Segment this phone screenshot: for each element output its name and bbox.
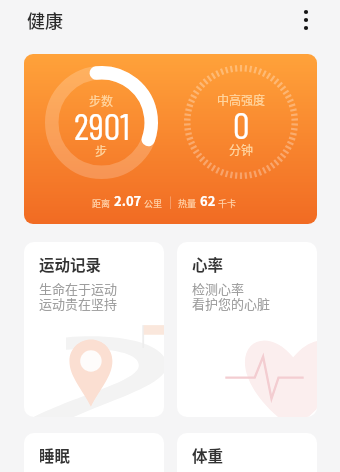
button[interactable]: 步数 xyxy=(24,54,317,224)
staticText: | xyxy=(169,193,172,209)
staticText: 62 xyxy=(200,191,216,210)
button[interactable]: 睡眠 xyxy=(24,433,164,472)
staticText: 体重 xyxy=(192,444,224,466)
button[interactable]: 心率 xyxy=(177,242,317,417)
staticText: 千卡 xyxy=(218,197,237,210)
staticText: 2.07 xyxy=(114,191,142,210)
button[interactable]: More options xyxy=(292,6,320,34)
staticText: 公里 xyxy=(144,197,163,210)
button[interactable]: 运动记录 xyxy=(24,242,164,417)
staticText: 生命在于运动 xyxy=(39,279,118,298)
staticText: 中高强度 xyxy=(217,91,266,108)
staticText: 心率 xyxy=(192,253,224,275)
staticText: 0 xyxy=(233,102,250,146)
staticText: 热量 xyxy=(178,197,197,210)
staticText: 检测心率 xyxy=(192,279,245,298)
staticText: 分钟 xyxy=(229,141,254,158)
staticText: 看护您的心脏 xyxy=(192,294,271,313)
staticText: 步 xyxy=(95,142,108,159)
staticText: 运动记录 xyxy=(39,253,102,275)
staticText: 2901 xyxy=(74,103,130,147)
staticText: 健康 xyxy=(27,7,63,33)
staticText: 距离 xyxy=(92,197,111,210)
staticText: 睡眠 xyxy=(39,444,71,466)
staticText: 步数 xyxy=(89,92,114,109)
staticText: 运动贵在坚持 xyxy=(39,294,118,313)
button[interactable]: 体重 xyxy=(177,433,317,472)
